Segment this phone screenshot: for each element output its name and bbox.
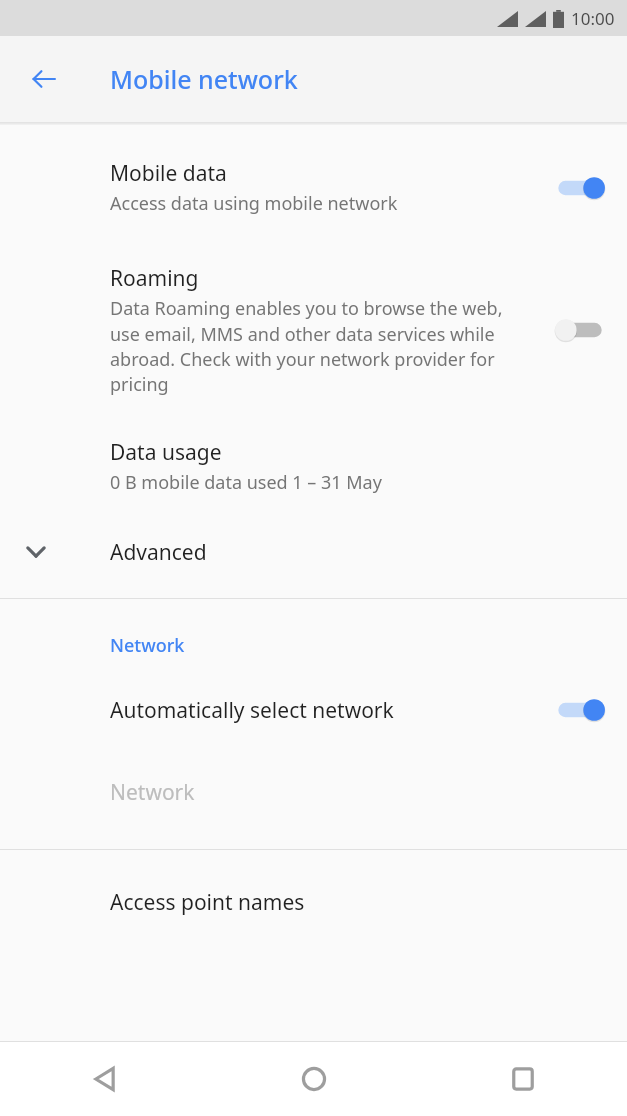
button[interactable]: Advanced [0,521,627,583]
staticText: Mobile data [110,159,227,188]
staticText: Data usage [110,438,222,467]
staticText: Access data using mobile network [110,191,398,216]
button[interactable]: Automatically select network [0,680,627,740]
button[interactable]: Data usage [0,425,627,507]
button[interactable]: Recent apps [418,1042,627,1116]
button[interactable]: Back [0,1042,209,1116]
button[interactable]: Access point names [0,850,627,954]
staticText: Mobile network [110,62,298,96]
button[interactable]: Back [18,53,70,105]
staticText: Advanced [110,538,207,567]
button[interactable]: Roaming [0,252,627,407]
staticText: Network [110,633,185,658]
button[interactable]: Network [0,762,627,822]
staticText: Data Roaming enables you to browse the w… [110,296,517,396]
staticText: 10:00 [571,7,615,30]
staticText: Automatically select network [110,696,394,725]
staticText: Roaming [110,264,199,293]
staticText: Access point names [110,888,305,917]
button[interactable]: Mobile data [0,145,627,230]
staticText: Network [110,778,195,807]
button[interactable]: Home [209,1042,418,1116]
staticText: 0 B mobile data used 1 – 31 May [110,470,382,495]
